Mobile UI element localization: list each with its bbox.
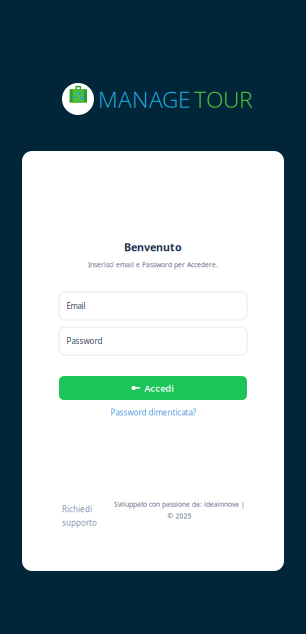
staticText: Password dimenticata? [110,407,195,418]
staticText: Password [66,336,102,346]
staticText: © 2025 [167,512,191,520]
button[interactable]: Accedi [59,376,247,400]
staticText: MANAGE [98,84,191,114]
staticText: Email [66,301,85,311]
staticText: Benvenuto [124,240,182,254]
staticText: Accedi [144,382,174,394]
button[interactable]: Password dimenticata? [110,407,195,418]
staticText: Inserisci email e Password per Accedere. [88,260,218,269]
button[interactable]: Email [59,292,247,320]
staticText: TOUR [194,84,253,114]
button[interactable]: Richiedi [59,500,104,528]
staticText: Richiedi [62,504,92,514]
staticText: supporto [62,517,97,528]
button[interactable]: Password [59,327,247,355]
staticText: Sviluppato con passione da: ideainnova | [114,500,245,509]
